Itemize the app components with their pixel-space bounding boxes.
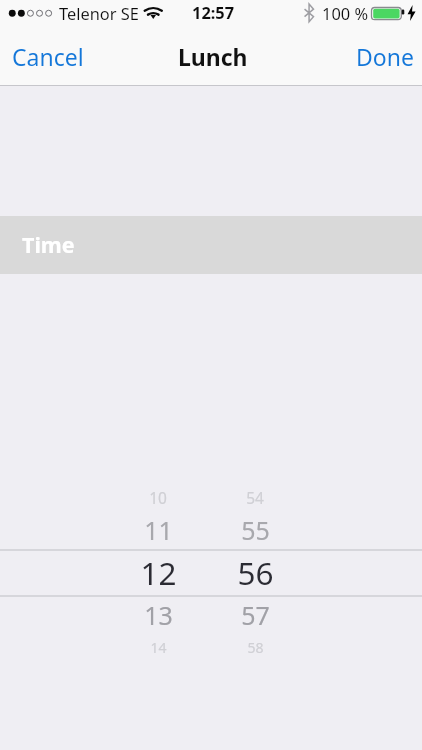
staticText: 13 (144, 598, 173, 628)
staticText: Cancel (12, 41, 84, 72)
button[interactable]: Done (344, 31, 422, 82)
other: Battery 100 percent (370, 6, 406, 22)
other: Bluetooth on (304, 4, 316, 23)
staticText: Telenor SE (59, 2, 139, 24)
staticText: Done (356, 41, 414, 72)
staticText: 11 (144, 513, 173, 543)
staticText: 14 (150, 638, 167, 655)
button[interactable]: 11 (108, 513, 208, 543)
button[interactable]: 10 (108, 487, 208, 506)
staticText: Time (22, 230, 75, 259)
other: Cellular signal (0, 0, 422, 28)
button[interactable]: 56 (205, 551, 305, 589)
button[interactable]: Cancel (0, 31, 96, 82)
button[interactable]: 54 (205, 487, 305, 506)
staticText: 57 (241, 598, 270, 628)
staticText: 12 (140, 551, 177, 589)
staticText: 100 % (322, 2, 369, 24)
other: Charging (407, 5, 416, 21)
staticText: 10 (149, 487, 167, 506)
staticText: 12:57 (192, 1, 235, 23)
button[interactable]: 55 (205, 513, 305, 543)
staticText: Lunch (178, 41, 248, 72)
button[interactable]: 13 (108, 598, 208, 628)
button[interactable]: 14 (108, 638, 208, 655)
staticText: 58 (247, 638, 264, 655)
button[interactable]: 58 (205, 638, 305, 655)
staticText: 55 (241, 513, 270, 543)
staticText: 54 (246, 487, 264, 506)
other: Wi-Fi signal (145, 6, 162, 19)
button[interactable]: 12 (108, 551, 208, 589)
button[interactable]: 57 (205, 598, 305, 628)
staticText: 56 (237, 551, 274, 589)
